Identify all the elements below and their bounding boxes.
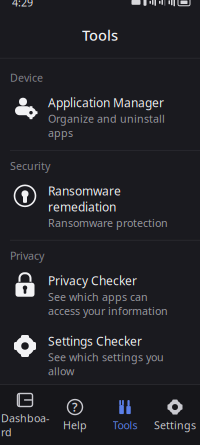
staticText: Privacy <box>10 249 44 263</box>
button[interactable]: Settings <box>150 392 200 435</box>
staticText: See which settings you allow <box>48 350 164 378</box>
staticText: Tools <box>82 25 118 45</box>
button[interactable]: ? <box>50 392 100 435</box>
staticText: Tools <box>112 418 137 432</box>
staticText: Device <box>10 70 43 85</box>
button[interactable]: Application Manager <box>0 90 200 146</box>
staticText: Ransomware remediation <box>48 183 121 215</box>
button[interactable]: Privacy Checker <box>0 268 200 324</box>
staticText: Help <box>63 418 87 432</box>
button[interactable]: Ransomware remediation <box>0 178 200 236</box>
staticText: 4:29 <box>12 0 33 9</box>
staticText: Privacy Checker <box>48 273 137 289</box>
button[interactable]: Dashboard <box>0 385 50 442</box>
staticText: Application Manager <box>48 95 164 111</box>
staticText: See which apps can access your informati… <box>48 290 168 318</box>
staticText: Ransomware protection <box>48 216 168 230</box>
staticText: Organize and uninstall apps <box>48 112 165 140</box>
staticText: Settings Checker <box>48 333 142 349</box>
button[interactable]: Settings Checker <box>0 328 200 384</box>
staticText: Security <box>10 159 50 173</box>
staticText: Settings <box>154 418 196 432</box>
button[interactable]: Tools <box>100 392 150 435</box>
staticText: Dashboard <box>1 411 49 439</box>
staticText: ? <box>72 399 78 415</box>
